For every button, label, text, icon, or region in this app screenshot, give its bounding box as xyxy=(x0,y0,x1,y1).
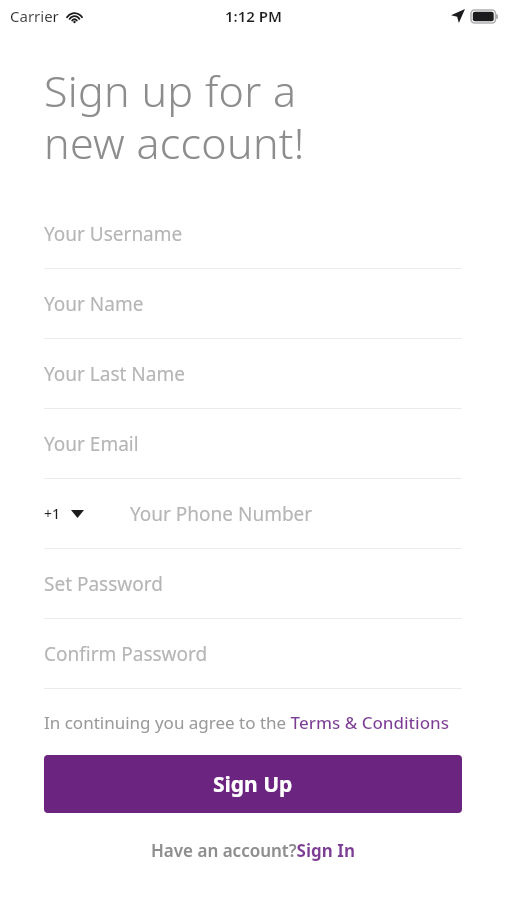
button[interactable]: Your Username xyxy=(44,199,462,269)
button[interactable]: Your Last Name xyxy=(44,339,462,409)
button[interactable]: Have an account?Sign In xyxy=(44,839,462,862)
button[interactable]: Sign Up xyxy=(44,755,462,813)
staticText: 1:12 PM xyxy=(225,6,282,26)
staticText: Set Password xyxy=(44,571,163,597)
staticText: Your Name xyxy=(44,291,144,317)
button[interactable]: Confirm Password xyxy=(44,619,462,689)
button[interactable]: +1 xyxy=(44,479,462,549)
staticText: Your Phone Number xyxy=(130,501,313,527)
other: Select country code xyxy=(71,510,84,518)
staticText: Your Username xyxy=(44,221,183,247)
button[interactable]: Your Email xyxy=(44,409,462,479)
staticText: Your Email xyxy=(44,431,139,457)
staticText: Have an account?Sign In xyxy=(151,839,355,862)
button[interactable]: Set Password xyxy=(44,549,462,619)
staticText: Carrier xyxy=(10,6,59,26)
staticText: In continuing you agree to the Terms & C… xyxy=(44,711,450,734)
staticText: Your Last Name xyxy=(44,361,185,387)
staticText: +1 xyxy=(44,504,61,523)
staticText: Sign Up xyxy=(213,770,293,799)
button[interactable]: Your Name xyxy=(44,269,462,339)
staticText: Confirm Password xyxy=(44,641,208,667)
button[interactable]: In continuing you agree to the Terms & C… xyxy=(44,711,462,734)
staticText: Sign up for a new account! xyxy=(44,61,305,171)
